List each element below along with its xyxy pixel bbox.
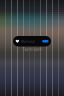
staticText: Tap to open [22,47,41,52]
button[interactable]: Workout [13,36,51,46]
staticText: Workout [21,39,35,44]
